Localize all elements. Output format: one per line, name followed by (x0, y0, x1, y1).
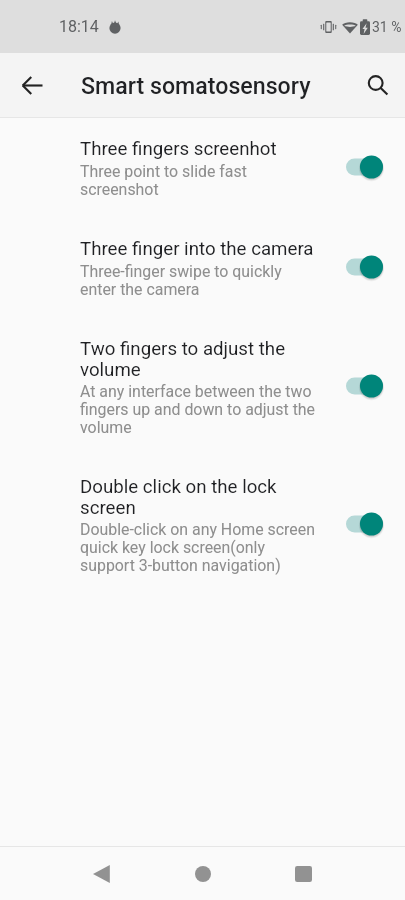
staticText: 18:14 (59, 17, 99, 36)
staticText: Two fingers to adjust the volume (80, 338, 320, 380)
button[interactable] (346, 509, 383, 542)
button[interactable]: Three finger into the camera (0, 218, 405, 318)
button[interactable] (346, 371, 383, 404)
staticText: Three point to slide fast screenshot (80, 162, 320, 199)
staticText: Smart somatosensory (81, 72, 311, 99)
staticText: Three finger into the camera (80, 238, 314, 260)
staticText: Double-click on any Home screen quick ke… (80, 520, 320, 575)
staticText: Double click on the lock screen (80, 476, 320, 518)
button[interactable]: Recents (253, 847, 354, 900)
staticText: Three-finger swipe to quickly enter the … (80, 262, 320, 299)
button[interactable] (346, 252, 383, 285)
button[interactable]: Home (152, 847, 253, 900)
button[interactable]: Three fingers screenhot (0, 118, 405, 218)
button[interactable]: Double click on the lock screen (0, 456, 405, 594)
button[interactable]: Back (51, 847, 152, 900)
button[interactable]: Two fingers to adjust the volume (0, 318, 405, 456)
button[interactable]: Back (0, 53, 64, 117)
staticText: At any interface between the two fingers… (80, 382, 320, 437)
staticText: 31 % (372, 19, 402, 35)
button[interactable]: Search (354, 61, 402, 109)
button[interactable] (346, 152, 383, 185)
staticText: Three fingers screenhot (80, 138, 277, 160)
